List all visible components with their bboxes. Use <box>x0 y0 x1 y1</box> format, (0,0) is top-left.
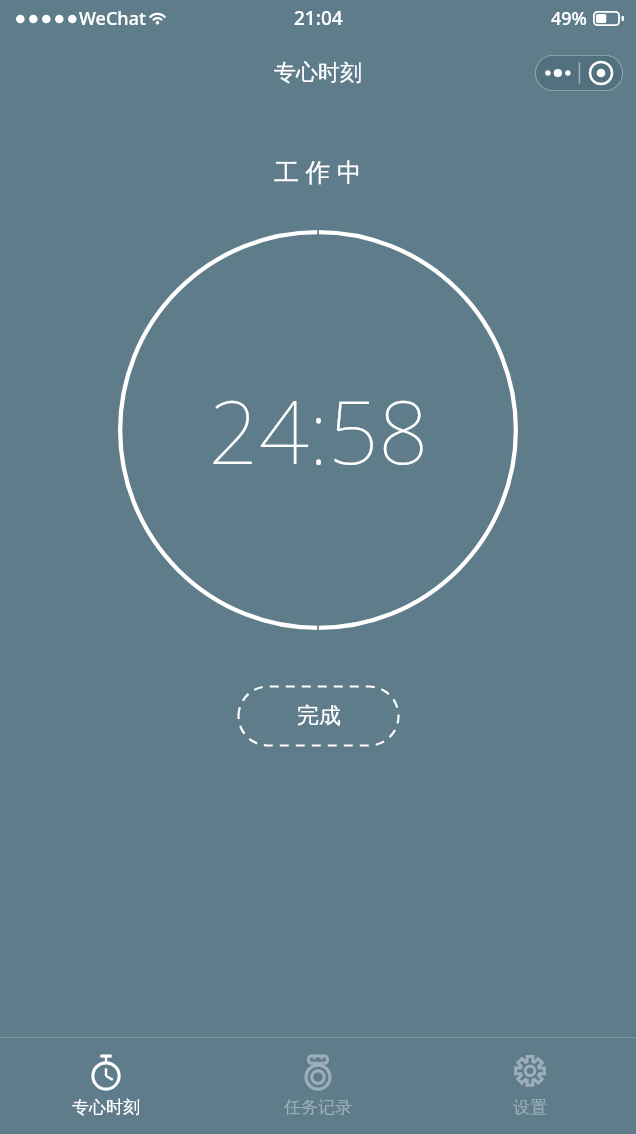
staticText: 24:58 <box>208 370 429 490</box>
staticText: 专心时刻 <box>274 59 362 87</box>
staticText: 完成 <box>297 702 341 730</box>
staticText: 设置 <box>513 1097 547 1118</box>
button[interactable]: 设置 <box>424 1038 636 1134</box>
staticText: 工 作 中 <box>0 154 636 188</box>
button[interactable]: More options and close <box>535 55 623 91</box>
staticText: 专心时刻 <box>72 1097 140 1118</box>
staticText: 任务记录 <box>284 1097 352 1118</box>
staticText: WeChat <box>79 6 146 31</box>
staticText: 21:04 <box>294 5 343 31</box>
button[interactable]: 任务记录 <box>212 1038 424 1134</box>
staticText: 49% <box>551 6 587 31</box>
button[interactable]: 专心时刻 <box>0 1038 212 1134</box>
button[interactable]: 完成 <box>237 685 400 747</box>
